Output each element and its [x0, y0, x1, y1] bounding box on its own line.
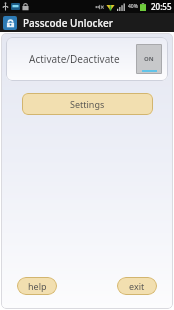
button[interactable]: Toggle activation, ON [136, 44, 162, 74]
staticText: help [28, 280, 47, 292]
button[interactable]: Settings [22, 93, 153, 115]
staticText: ON [144, 55, 154, 63]
staticText: 40% [128, 3, 138, 10]
staticText: Passcode Unlocker [23, 16, 114, 30]
button[interactable]: Activate/Deactivate [6, 37, 168, 81]
staticText: exit [129, 280, 145, 292]
staticText: Activate/Deactivate [29, 52, 120, 66]
button[interactable]: help [17, 277, 57, 295]
staticText: 20:55 [151, 1, 172, 12]
button[interactable]: exit [117, 277, 157, 295]
staticText: Settings [70, 98, 105, 110]
other: App icon [3, 16, 17, 30]
